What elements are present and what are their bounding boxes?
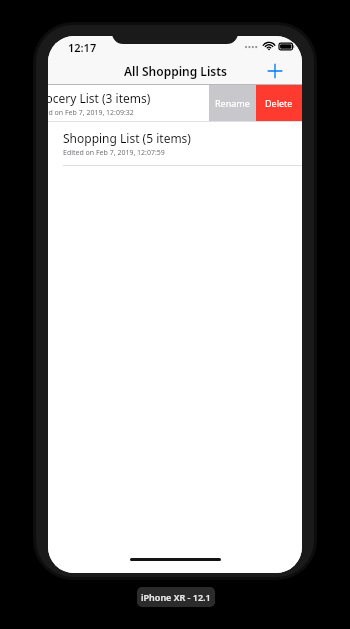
staticText: Shopping List (5 items) [63, 130, 191, 146]
staticText: Delete [265, 97, 293, 109]
button[interactable]: Delete [256, 85, 302, 121]
staticText: Edited on Feb 7, 2019, 12:07:59 [63, 148, 165, 158]
button[interactable]: Rename [209, 85, 256, 121]
button[interactable]: Shopping List (5 items) [48, 122, 302, 165]
staticText: 12:17 [68, 40, 97, 55]
staticText: All Shopping Lists [124, 63, 227, 79]
button[interactable]: Add list [258, 56, 292, 85]
button[interactable]: Grocery List (3 items) [48, 85, 302, 121]
staticText: Grocery List (3 items) [48, 90, 151, 106]
staticText: iPhone XR - 12.1 [141, 591, 211, 603]
staticText: Rename [215, 97, 250, 109]
staticText: Edited on Feb 7, 2019, 12:09:32 [48, 108, 134, 118]
